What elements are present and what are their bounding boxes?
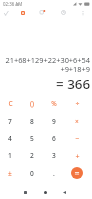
staticText: C <box>8 99 13 108</box>
staticText: − <box>75 134 80 144</box>
staticText: 1 <box>8 151 12 160</box>
staticText: % <box>51 99 57 108</box>
staticText: 0 <box>30 169 34 178</box>
button[interactable]: ± <box>0 165 21 182</box>
staticText: ÷ <box>75 99 80 109</box>
button[interactable]: 1 <box>0 147 21 164</box>
button[interactable]: 0 <box>21 165 43 182</box>
button[interactable]: Unit converter <box>37 7 48 18</box>
staticText: = 366 <box>56 75 91 93</box>
button[interactable]: 8 <box>21 113 43 130</box>
staticText: . <box>53 169 55 178</box>
staticText: 21+68+129+22+30+6+54 +9+18+9 <box>5 55 90 74</box>
button[interactable]: 9 <box>43 113 65 130</box>
staticText: 6 <box>52 134 56 143</box>
button[interactable]: ÷ <box>66 95 88 112</box>
button[interactable]: 4 <box>0 130 21 147</box>
button[interactable]: . <box>43 165 65 182</box>
button[interactable]: Equals <box>71 167 83 179</box>
staticText: () <box>30 99 34 108</box>
staticText: 2 <box>30 151 34 160</box>
button[interactable]: 2 <box>21 147 43 164</box>
button[interactable]: () <box>21 95 43 112</box>
staticText: 9 <box>52 117 56 126</box>
button[interactable]: 5 <box>21 130 43 147</box>
staticText: 3 <box>52 151 56 160</box>
staticText: ± <box>8 169 12 178</box>
staticText: 02:36 AM <box>3 1 23 7</box>
button[interactable]: History <box>58 7 69 18</box>
button[interactable]: More options <box>77 7 88 18</box>
button[interactable]: % <box>43 95 65 112</box>
button[interactable]: Home <box>40 187 51 198</box>
button[interactable]: Back <box>59 187 70 198</box>
button[interactable]: × <box>66 113 88 130</box>
button[interactable]: 7 <box>0 113 21 130</box>
button[interactable]: C <box>0 95 21 112</box>
button[interactable]: 3 <box>43 147 65 164</box>
staticText: 5 <box>30 134 34 143</box>
staticText: 7 <box>8 117 12 126</box>
staticText: 8 <box>30 117 34 126</box>
button[interactable]: Scientific mode <box>1 8 12 19</box>
button[interactable]: − <box>66 130 88 147</box>
button[interactable]: + <box>66 147 88 164</box>
staticText: + <box>75 151 80 161</box>
staticText: × <box>75 117 79 126</box>
button[interactable]: Calculator <box>17 7 28 18</box>
button[interactable]: Recents <box>20 187 31 198</box>
button[interactable]: 6 <box>43 130 65 147</box>
staticText: 4 <box>8 134 12 143</box>
